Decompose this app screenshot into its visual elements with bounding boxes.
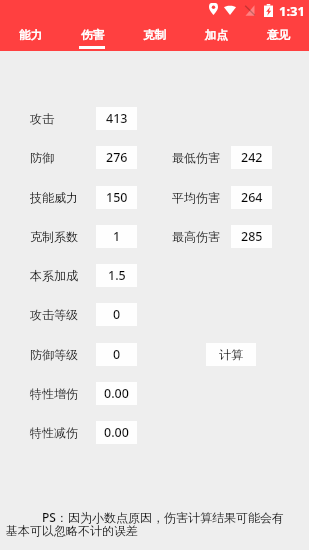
staticText: 加点	[205, 28, 228, 42]
staticText: 150	[106, 189, 128, 206]
button[interactable]: 0	[96, 303, 137, 326]
button[interactable]: 242	[231, 146, 272, 169]
button[interactable]: 150	[96, 186, 137, 209]
staticText: 计算	[219, 347, 243, 362]
staticText: 伤害	[81, 28, 104, 42]
other: No SIM card	[245, 5, 255, 16]
staticText: 平均伤害	[172, 190, 220, 205]
staticText: 1.5	[108, 267, 126, 284]
button[interactable]: 计算	[206, 343, 256, 366]
button[interactable]: 意见	[247, 18, 309, 51]
staticText: 攻击	[30, 111, 54, 126]
staticText: 特性增伤	[30, 386, 78, 401]
staticText: 413	[106, 110, 128, 127]
button[interactable]: 285	[231, 225, 272, 248]
button[interactable]: 413	[96, 107, 137, 130]
button[interactable]: 0	[96, 343, 137, 366]
staticText: 264	[241, 189, 263, 206]
button[interactable]: 能力	[0, 18, 61, 51]
button[interactable]: 264	[231, 186, 272, 209]
button[interactable]: 伤害	[61, 18, 123, 51]
button[interactable]: 0.00	[96, 421, 137, 444]
staticText: 防御	[30, 150, 54, 165]
button[interactable]: 1	[96, 225, 137, 248]
staticText: 技能威力	[30, 190, 78, 205]
staticText: 285	[241, 228, 263, 245]
staticText: 0	[113, 346, 121, 363]
staticText: 1	[113, 228, 121, 245]
staticText: 能力	[19, 28, 42, 42]
staticText: 0.00	[104, 385, 129, 402]
staticText: 最低伤害	[172, 150, 220, 165]
staticText: 1:31	[279, 2, 305, 20]
other: Wi-Fi	[224, 4, 236, 15]
button[interactable]: 0.00	[96, 382, 137, 405]
staticText: 克制	[143, 28, 166, 42]
staticText: 本系加成	[30, 268, 78, 283]
staticText: 0	[113, 306, 121, 323]
staticText: 特性减伤	[30, 425, 78, 440]
button[interactable]: 加点	[185, 18, 247, 51]
button[interactable]: 1.5	[96, 264, 137, 287]
staticText: PS：因为小数点原因，伤害计算结果可能会有 基本可以忽略不计的误差	[6, 509, 284, 538]
staticText: 克制系数	[30, 229, 78, 244]
staticText: 276	[106, 149, 128, 166]
button[interactable]: 276	[96, 146, 137, 169]
other: Battery charging	[264, 4, 273, 17]
other: Location	[209, 3, 218, 15]
staticText: 防御等级	[30, 347, 78, 362]
staticText: 攻击等级	[30, 307, 78, 322]
staticText: 意见	[267, 28, 290, 42]
staticText: 0.00	[104, 424, 129, 441]
staticText: 最高伤害	[172, 229, 220, 244]
staticText: 242	[241, 149, 263, 166]
button[interactable]: 克制	[123, 18, 185, 51]
